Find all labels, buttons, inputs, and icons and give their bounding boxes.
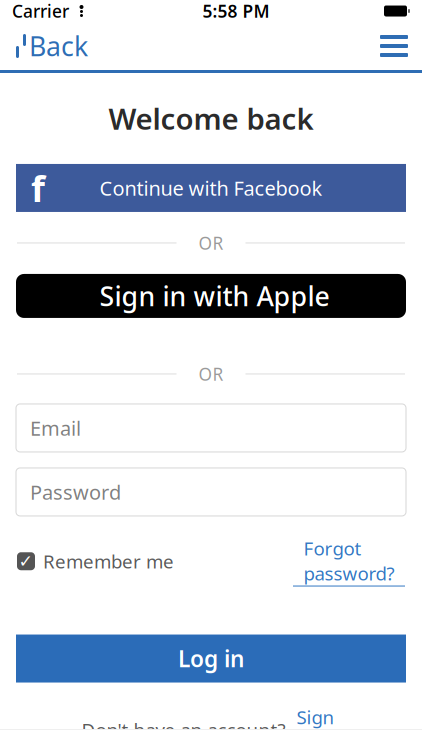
button[interactable]: Sign up bbox=[290, 704, 340, 750]
staticText: Sign up bbox=[296, 704, 334, 750]
button[interactable]: f bbox=[0, 164, 422, 212]
button[interactable]: ✓ bbox=[17, 545, 174, 578]
button[interactable]: Forgot password? bbox=[293, 532, 405, 591]
staticText: Continue with Facebook bbox=[99, 175, 322, 201]
staticText: Carrier bbox=[12, 0, 69, 22]
staticText: Welcome back bbox=[108, 99, 313, 138]
staticText: Don't have an account? bbox=[81, 717, 285, 742]
staticText: OR bbox=[198, 231, 223, 254]
staticText: 5:58 PM bbox=[202, 0, 269, 22]
staticText: Back bbox=[29, 28, 88, 64]
staticText: OR bbox=[198, 362, 223, 385]
button[interactable]: Log in bbox=[0, 634, 422, 682]
staticText: Forgot password? bbox=[303, 536, 394, 586]
staticText: Password bbox=[30, 479, 121, 505]
button[interactable] bbox=[0, 274, 422, 318]
staticText: f bbox=[31, 164, 45, 212]
button[interactable]: Back bbox=[0, 20, 98, 72]
staticText: Sign in with Apple bbox=[99, 278, 329, 314]
button[interactable]: Menu bbox=[366, 25, 422, 67]
staticText: Remember me bbox=[43, 549, 174, 574]
staticText: Email bbox=[30, 415, 81, 441]
staticText: Log in bbox=[178, 643, 244, 674]
staticText: ✓ bbox=[18, 551, 33, 571]
